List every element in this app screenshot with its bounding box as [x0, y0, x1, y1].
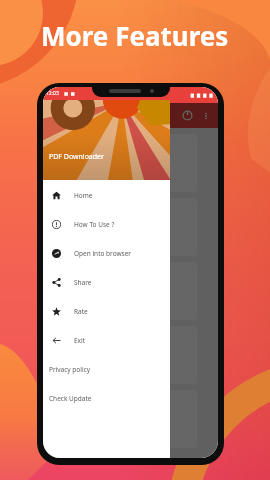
button[interactable]: Exit — [43, 326, 170, 355]
staticText: Exit — [74, 336, 86, 345]
button[interactable]: Home — [43, 181, 170, 210]
button[interactable]: How To Use ? — [43, 210, 170, 239]
staticText: More Features — [41, 18, 229, 53]
staticText: PDF Downloader — [60, 168, 100, 175]
staticText: How To Use ? — [74, 220, 115, 229]
button[interactable]: Open into browser — [43, 239, 170, 268]
button[interactable]: Power — [178, 106, 197, 125]
button[interactable]: Settings — [52, 390, 197, 448]
button[interactable]: PDF Library — [52, 198, 197, 256]
button[interactable]: PDF Downloader — [52, 134, 197, 192]
button[interactable]: Reading Time — [52, 326, 197, 384]
staticText: 12:03 — [46, 90, 59, 97]
button[interactable]: Facebook — [52, 262, 197, 320]
button[interactable]: More options — [197, 107, 214, 124]
staticText: Check Update — [49, 394, 92, 403]
staticText: Rate — [74, 307, 88, 316]
button[interactable]: Check Update — [43, 384, 170, 413]
staticText: Home — [74, 191, 93, 200]
staticText: Open into browser — [74, 249, 132, 258]
staticText: PDF Downloader — [49, 152, 104, 162]
button[interactable]: Share — [43, 268, 170, 297]
staticText: 12:03 — [47, 91, 63, 99]
staticText: Privacy policy — [49, 365, 91, 374]
staticText: Share — [74, 278, 92, 287]
button[interactable]: Privacy policy — [43, 355, 170, 384]
button[interactable]: Rate — [43, 297, 170, 326]
